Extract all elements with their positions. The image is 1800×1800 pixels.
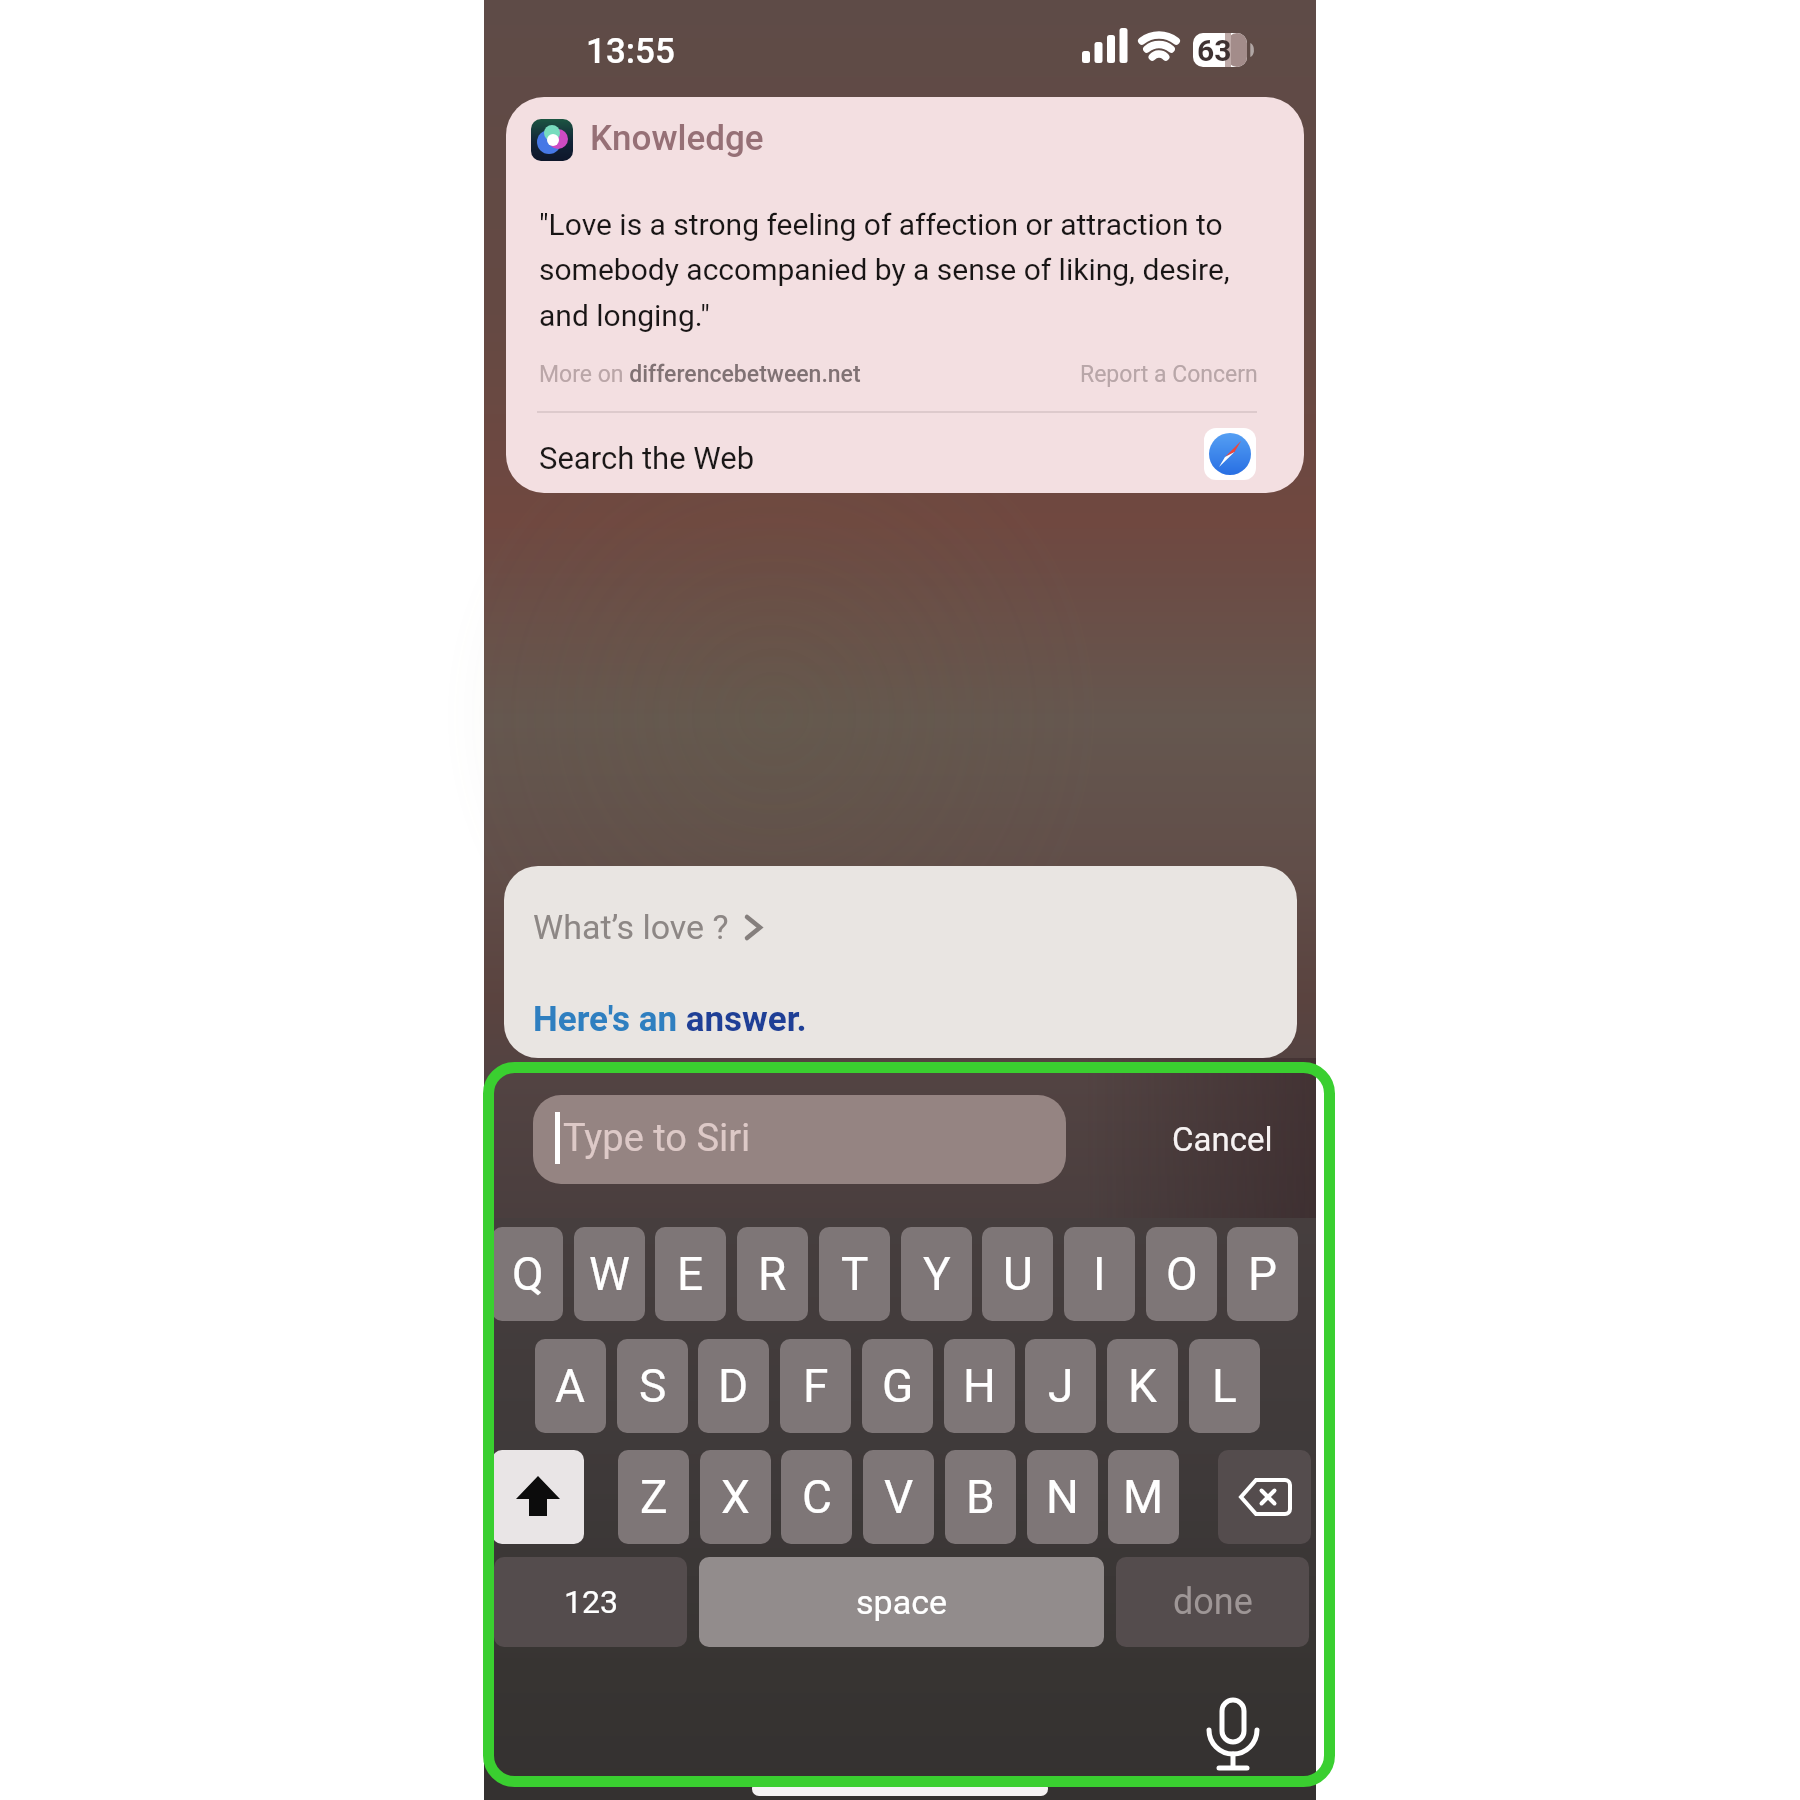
button[interactable]: 123: [494, 1557, 687, 1647]
staticText: Q: [512, 1247, 544, 1301]
staticText: Type to Siri: [563, 1116, 751, 1161]
button[interactable]: More on differencebetween.net: [539, 361, 861, 388]
staticText: G: [882, 1359, 914, 1413]
button[interactable]: R: [737, 1227, 808, 1321]
staticText: T: [841, 1247, 869, 1301]
button[interactable]: U: [982, 1227, 1053, 1321]
button[interactable]: S: [617, 1339, 688, 1433]
button[interactable]: Knowledge: [506, 97, 1304, 493]
staticText: D: [718, 1359, 749, 1413]
button[interactable]: J: [1025, 1339, 1096, 1433]
staticText: J: [1048, 1359, 1074, 1413]
staticText: L: [1212, 1359, 1237, 1413]
staticText: Z: [640, 1470, 668, 1524]
staticText: Search the Web: [539, 440, 755, 476]
staticText: I: [1093, 1247, 1106, 1301]
staticText: B: [966, 1470, 995, 1524]
button[interactable]: A: [535, 1339, 606, 1433]
button[interactable]: [1218, 1450, 1311, 1544]
staticText: Y: [923, 1247, 951, 1301]
button[interactable]: Z: [618, 1450, 689, 1544]
button[interactable]: space: [699, 1557, 1104, 1647]
button[interactable]: P: [1227, 1227, 1298, 1321]
button[interactable]: Cancel: [1172, 1120, 1273, 1159]
staticText: 63: [1197, 33, 1232, 68]
button[interactable]: Type to Siri: [533, 1095, 1066, 1184]
staticText: R: [758, 1247, 787, 1301]
staticText: M: [1123, 1470, 1164, 1524]
button[interactable]: Search the Web: [506, 415, 1304, 493]
button[interactable]: What’s love ?: [504, 866, 1297, 1058]
button[interactable]: Report a Concern: [1080, 361, 1258, 388]
staticText: O: [1166, 1247, 1198, 1301]
staticText: S: [639, 1359, 667, 1413]
button[interactable]: Here's an answer.: [533, 999, 807, 1040]
button[interactable]: G: [862, 1339, 933, 1433]
button[interactable]: [492, 1450, 584, 1544]
button[interactable]: X: [700, 1450, 771, 1544]
button[interactable]: T: [819, 1227, 890, 1321]
button[interactable]: B: [945, 1450, 1016, 1544]
staticText: U: [1003, 1247, 1033, 1301]
button[interactable]: K: [1107, 1339, 1178, 1433]
button[interactable]: Y: [901, 1227, 972, 1321]
button[interactable]: done: [1116, 1557, 1309, 1647]
staticText: E: [677, 1247, 704, 1301]
staticText: 123: [564, 1583, 618, 1621]
button[interactable]: L: [1189, 1339, 1260, 1433]
button[interactable]: Q: [492, 1227, 563, 1321]
button[interactable]: D: [698, 1339, 769, 1433]
button[interactable]: I: [1064, 1227, 1135, 1321]
staticText: A: [555, 1359, 586, 1413]
staticText: F: [803, 1359, 829, 1413]
staticText: P: [1248, 1247, 1278, 1301]
staticText: "Love is a strong feeling of affection o…: [539, 207, 1230, 334]
button[interactable]: M: [1108, 1450, 1179, 1544]
staticText: X: [721, 1470, 750, 1524]
button[interactable]: H: [944, 1339, 1015, 1433]
staticText: W: [589, 1247, 630, 1301]
staticText: K: [1128, 1359, 1157, 1413]
button[interactable]: C: [781, 1450, 852, 1544]
staticText: done: [1173, 1581, 1253, 1623]
staticText: Knowledge: [590, 118, 764, 159]
staticText: Cancel: [1172, 1120, 1273, 1159]
staticText: C: [802, 1470, 832, 1524]
staticText: N: [1046, 1470, 1079, 1524]
staticText: What’s love ?: [533, 907, 729, 947]
button[interactable]: W: [574, 1227, 645, 1321]
staticText: space: [856, 1582, 947, 1622]
button[interactable]: O: [1146, 1227, 1217, 1321]
button[interactable]: F: [780, 1339, 851, 1433]
button[interactable]: N: [1027, 1450, 1098, 1544]
button[interactable]: V: [863, 1450, 934, 1544]
button[interactable]: E: [655, 1227, 726, 1321]
staticText: V: [884, 1470, 914, 1524]
staticText: 13:55: [586, 31, 675, 72]
staticText: H: [963, 1359, 996, 1413]
